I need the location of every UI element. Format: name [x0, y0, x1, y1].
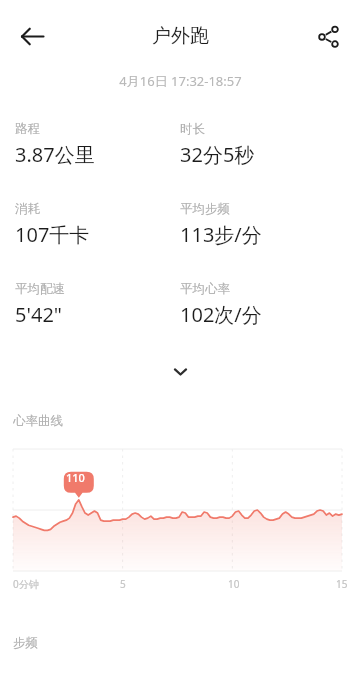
staticText: 时长: [180, 121, 205, 137]
button[interactable]: Back: [8, 12, 56, 60]
staticText: 步频: [13, 635, 38, 651]
staticText: 10: [228, 577, 240, 591]
staticText: 3.87公里: [15, 141, 95, 168]
staticText: 4月16日 17:32-18:57: [119, 72, 242, 90]
staticText: 110: [66, 470, 85, 485]
staticText: 5: [120, 577, 126, 591]
staticText: 平均配速: [15, 281, 65, 297]
staticText: 107千卡: [15, 221, 90, 248]
button[interactable]: Share: [304, 12, 352, 60]
staticText: 平均心率: [180, 281, 230, 297]
staticText: 32分5秒: [180, 141, 255, 168]
staticText: 户外跑: [152, 24, 209, 48]
staticText: 路程: [15, 121, 40, 137]
staticText: 113步/分: [180, 221, 262, 248]
staticText: 5'42": [15, 301, 62, 328]
staticText: 15: [336, 577, 348, 591]
staticText: 102次/分: [180, 301, 262, 328]
staticText: 0分钟: [13, 577, 39, 591]
staticText: 心率曲线: [13, 413, 63, 429]
staticText: 消耗: [15, 201, 40, 217]
button[interactable]: Expand details: [159, 350, 201, 392]
staticText: 平均步频: [180, 201, 230, 217]
